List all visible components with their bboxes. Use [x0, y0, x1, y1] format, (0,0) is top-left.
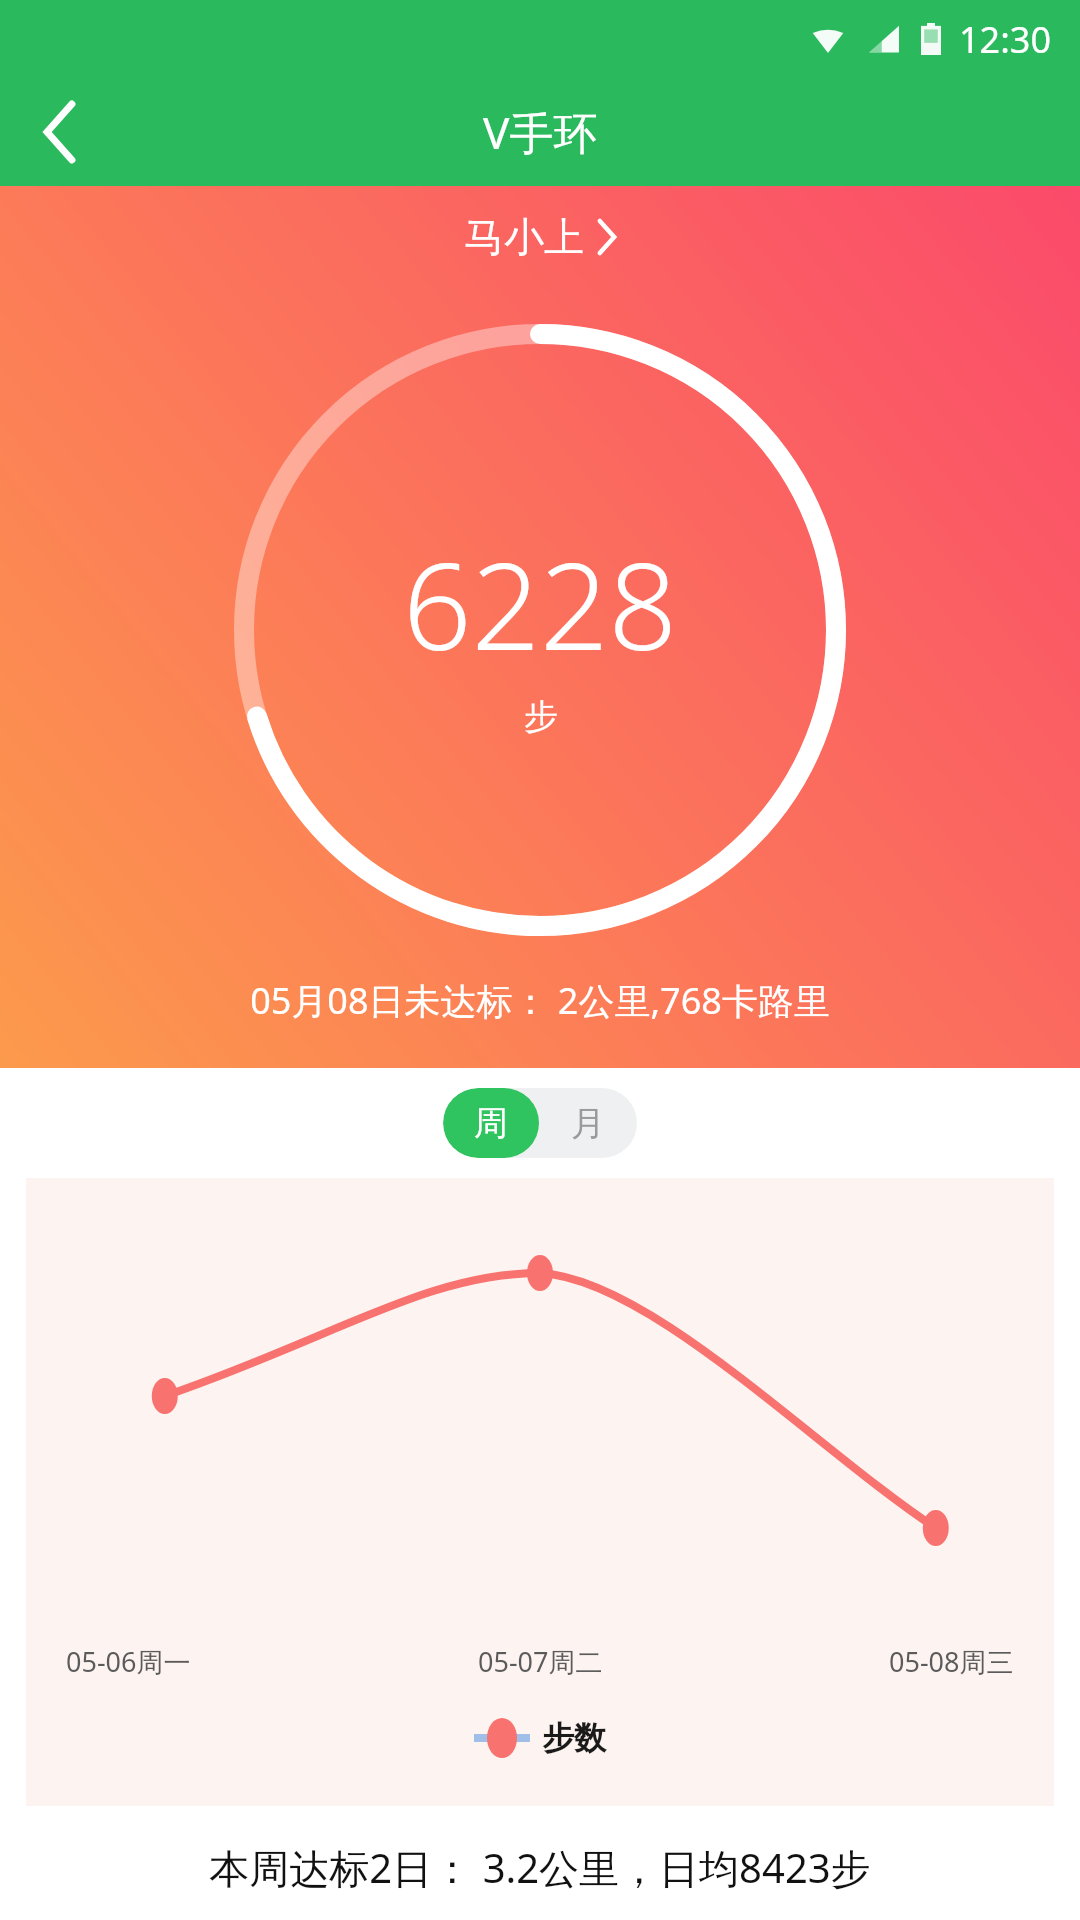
- button[interactable]: 月: [539, 1088, 637, 1158]
- staticText: 步: [524, 695, 558, 738]
- staticText: 月: [571, 1102, 605, 1145]
- staticText: V手环: [483, 102, 598, 162]
- staticText: 6228: [403, 522, 678, 685]
- button[interactable]: 周: [443, 1088, 539, 1158]
- staticText: 本周达标2日： 3.2公里，日均8423步: [0, 1840, 1080, 1895]
- staticText: 05-08周三: [889, 1643, 1014, 1680]
- staticText: 马小上: [464, 212, 584, 262]
- staticText: 12:30: [959, 15, 1052, 64]
- staticText: 步数: [542, 1718, 606, 1758]
- staticText: 05-06周一: [66, 1643, 191, 1680]
- button[interactable]: 马小上: [448, 206, 632, 268]
- staticText: 05-07周二: [478, 1643, 603, 1680]
- staticText: 05月08日未达标： 2公里,768卡路里: [250, 976, 830, 1025]
- staticText: 周: [474, 1102, 508, 1145]
- button[interactable]: Back: [0, 78, 120, 186]
